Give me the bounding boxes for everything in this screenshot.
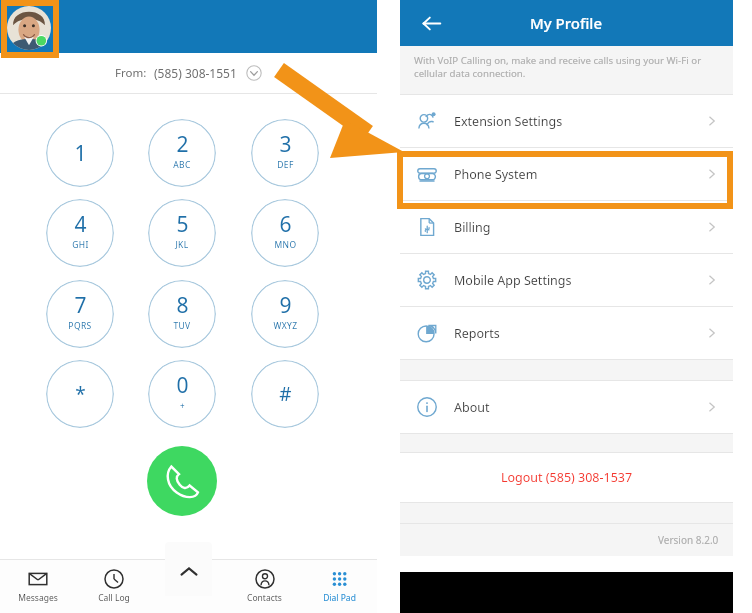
staticText: GHI (72, 239, 89, 251)
button[interactable]: Contacts (227, 560, 302, 613)
staticText: My Profile (530, 13, 603, 33)
button[interactable]: Mobile App Settings (400, 254, 733, 306)
button[interactable]: 3 (251, 119, 319, 187)
staticText: JKL (175, 239, 189, 251)
staticText: Messages (18, 592, 58, 604)
staticText: Logout (585) 308-1537 (501, 469, 633, 486)
staticText: 9 (279, 291, 292, 320)
staticText: (585) 308-1551 (154, 65, 237, 81)
staticText: From: (115, 65, 147, 81)
button[interactable]: # (251, 360, 319, 428)
staticText: 8 (176, 291, 189, 320)
staticText: 2 (176, 130, 189, 159)
staticText: Extension Settings (454, 113, 705, 130)
staticText: PQRS (68, 320, 92, 332)
button[interactable]: 1 (46, 119, 114, 187)
button[interactable]: Reports (400, 307, 733, 359)
button[interactable]: Call Log (76, 560, 152, 613)
button[interactable]: About (400, 381, 733, 433)
button[interactable]: * (46, 360, 114, 428)
button[interactable]: 4 (46, 199, 114, 267)
button[interactable]: Profile avatar (7, 6, 51, 50)
staticText: DEF (277, 159, 294, 171)
staticText: Call Log (98, 592, 130, 604)
staticText: # (279, 381, 292, 407)
button[interactable]: Extension Settings (400, 95, 733, 147)
button[interactable]: Logout (585) 308-1537 (400, 453, 733, 502)
staticText: Contacts (247, 592, 282, 604)
staticText: About (454, 399, 705, 416)
staticText: 6 (279, 210, 292, 239)
staticText: 7 (74, 291, 87, 320)
button[interactable]: Call (147, 446, 217, 516)
staticText: 1 (74, 139, 87, 168)
staticText: Billing (454, 219, 705, 236)
button[interactable]: Billing (400, 201, 733, 253)
button[interactable]: 8 (148, 280, 216, 348)
button[interactable]: Phone System (400, 148, 733, 200)
staticText: 0 (176, 371, 189, 400)
button[interactable]: 6 (251, 199, 319, 267)
staticText: TUV (173, 320, 191, 332)
button[interactable]: Dial Pad (302, 560, 377, 613)
staticText: ABC (173, 159, 191, 171)
button[interactable]: Back (408, 0, 454, 46)
staticText: Mobile App Settings (454, 272, 705, 289)
staticText: MNO (274, 239, 297, 251)
staticText: + (180, 400, 185, 411)
staticText: 4 (74, 210, 87, 239)
staticText: * (75, 381, 86, 407)
staticText: WXYZ (273, 320, 298, 332)
staticText: Reports (454, 325, 705, 342)
staticText: Version 8.2.0 (658, 533, 719, 547)
button[interactable]: Messages (0, 560, 76, 613)
button[interactable]: 2 (148, 119, 216, 187)
staticText: With VoIP Calling on, make and receive c… (414, 54, 715, 80)
button[interactable]: Expand (165, 542, 212, 596)
staticText: 3 (279, 130, 292, 159)
button[interactable]: 5 (148, 199, 216, 267)
staticText: Phone System (454, 166, 705, 183)
staticText: Dial Pad (323, 592, 356, 604)
staticText: 5 (176, 210, 189, 239)
button[interactable]: 9 (251, 280, 319, 348)
button[interactable]: 0 (148, 360, 216, 428)
button[interactable]: From: (0, 53, 377, 93)
button[interactable]: 7 (46, 280, 114, 348)
